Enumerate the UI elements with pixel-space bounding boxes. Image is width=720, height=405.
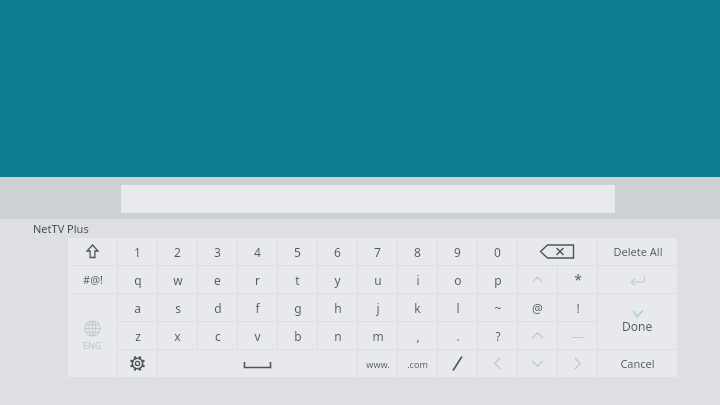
other: Language ENG	[68, 294, 117, 377]
button[interactable]: m	[358, 322, 398, 350]
button[interactable]: 3	[198, 238, 238, 266]
other: Shift	[68, 238, 117, 265]
button[interactable]: r	[238, 266, 278, 294]
other: Backspace	[518, 238, 597, 265]
button[interactable]: Left	[478, 350, 518, 378]
button[interactable]: 7	[358, 238, 398, 266]
button[interactable]: v	[238, 322, 278, 350]
button[interactable]: 6	[318, 238, 358, 266]
staticText: t	[295, 272, 300, 288]
button[interactable]: #@!	[68, 266, 118, 294]
button[interactable]: j	[358, 294, 398, 322]
button[interactable]: ,	[398, 322, 438, 350]
button[interactable]: Backspace	[518, 238, 598, 266]
button[interactable]: e	[198, 266, 238, 294]
button[interactable]: Language ENG	[68, 294, 118, 378]
staticText: 3	[214, 244, 221, 260]
staticText: s	[175, 300, 181, 316]
button[interactable]: 4	[238, 238, 278, 266]
button[interactable]: f	[238, 294, 278, 322]
button[interactable]: k	[398, 294, 438, 322]
staticText: Cancel	[620, 356, 655, 371]
button[interactable]: @	[518, 294, 558, 322]
button[interactable]: Right	[558, 350, 598, 378]
other: Down	[518, 350, 557, 377]
staticText: NetTV Plus	[33, 221, 89, 236]
button[interactable]: Up	[518, 266, 558, 294]
staticText: Delete All	[613, 244, 663, 259]
button[interactable]: c	[198, 322, 238, 350]
button[interactable]: .	[438, 322, 478, 350]
button[interactable]: 1	[118, 238, 158, 266]
button[interactable]: 5	[278, 238, 318, 266]
button[interactable]: u	[358, 266, 398, 294]
staticText: !	[576, 300, 580, 316]
other: Right	[558, 350, 597, 377]
staticText: d	[214, 300, 222, 316]
button[interactable]: .com	[398, 350, 438, 378]
button[interactable]: w	[158, 266, 198, 294]
button[interactable]: y	[318, 266, 358, 294]
button[interactable]: z	[118, 322, 158, 350]
button[interactable]: Settings	[118, 350, 158, 378]
button[interactable]: g	[278, 294, 318, 322]
staticText: a	[134, 300, 141, 316]
button[interactable]: a	[118, 294, 158, 322]
button[interactable]: *	[558, 266, 598, 294]
staticText: y	[334, 272, 341, 288]
button[interactable]: p	[478, 266, 518, 294]
button[interactable]: t	[278, 266, 318, 294]
staticText: .com	[407, 358, 428, 370]
button[interactable]: ?	[478, 322, 518, 350]
button[interactable]: 9	[438, 238, 478, 266]
other: Left	[478, 350, 517, 377]
button[interactable]: s	[158, 294, 198, 322]
button[interactable]: Up arrow	[518, 322, 558, 350]
button[interactable]: Cancel	[598, 350, 678, 378]
button[interactable]: Done	[598, 294, 678, 350]
staticText: 6	[334, 244, 341, 260]
button[interactable]: i	[398, 266, 438, 294]
button[interactable]: 8	[398, 238, 438, 266]
button[interactable]: ~	[478, 294, 518, 322]
button[interactable]: Enter	[598, 266, 678, 294]
button[interactable]: l	[438, 294, 478, 322]
button[interactable]: Delete All	[598, 238, 678, 266]
staticText: z	[135, 328, 141, 344]
staticText: @	[532, 300, 543, 316]
button[interactable]: !	[558, 294, 598, 322]
staticText: e	[214, 272, 221, 288]
button[interactable]: 2	[158, 238, 198, 266]
staticText: 9	[454, 244, 461, 260]
staticText: v	[254, 328, 261, 344]
staticText: h	[334, 300, 342, 316]
other: Up	[518, 266, 557, 293]
staticText: www.	[366, 358, 390, 370]
button[interactable]: 0	[478, 238, 518, 266]
button[interactable]: o	[438, 266, 478, 294]
staticText: p	[494, 272, 502, 288]
staticText: x	[174, 328, 181, 344]
button[interactable]: d	[198, 294, 238, 322]
staticText: ,	[416, 328, 420, 344]
button[interactable]: Shift	[68, 238, 118, 266]
staticText: *	[574, 270, 582, 289]
button[interactable]: —	[558, 322, 598, 350]
staticText: 0	[494, 244, 501, 260]
button[interactable]: b	[278, 322, 318, 350]
staticText: .	[456, 328, 460, 344]
button[interactable]: h	[318, 294, 358, 322]
other: Up arrow	[518, 322, 557, 349]
other: Settings	[118, 350, 157, 377]
staticText: r	[255, 272, 260, 288]
button[interactable]: Down	[518, 350, 558, 378]
button[interactable]: Space	[158, 350, 358, 378]
button[interactable]: n	[318, 322, 358, 350]
other: Slash	[438, 350, 477, 377]
staticText: 5	[294, 244, 301, 260]
button[interactable]: q	[118, 266, 158, 294]
button[interactable]: x	[158, 322, 198, 350]
button[interactable]: www.	[358, 350, 398, 378]
button[interactable]: Slash	[438, 350, 478, 378]
